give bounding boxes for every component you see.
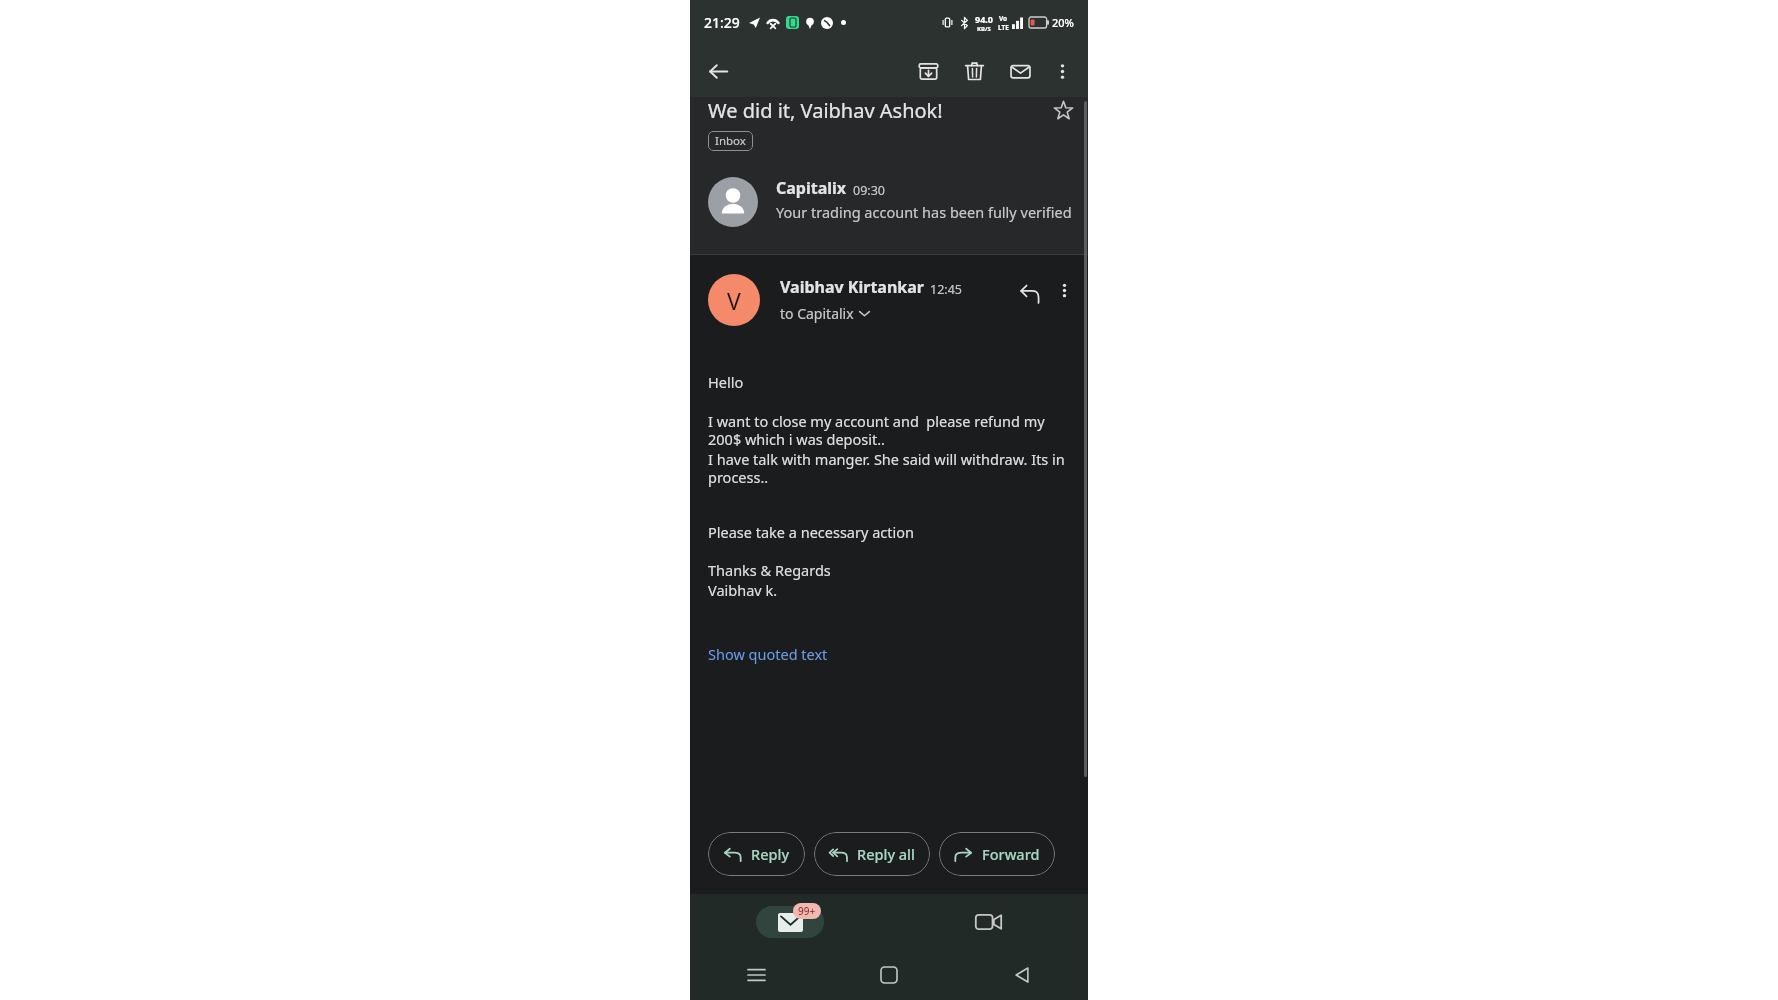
staticText: Hello	[708, 372, 744, 392]
button[interactable]: to Capitalix	[780, 304, 870, 323]
staticText: Please take a necessary action	[708, 522, 914, 542]
button[interactable]: Reply all	[814, 832, 930, 876]
staticText: 12:45	[930, 281, 962, 298]
staticText: We did it, Vaibhav Ashok!	[708, 97, 1046, 123]
staticText: 99+	[798, 904, 816, 918]
button[interactable]: Forward	[939, 832, 1055, 876]
staticText: 09:30	[853, 182, 885, 199]
button[interactable]: Reply	[1010, 274, 1048, 312]
staticText: Vaibhav k.	[708, 580, 778, 600]
button[interactable]: Mark unread	[1000, 51, 1040, 91]
button[interactable]: More options	[1042, 51, 1082, 91]
button[interactable]: Star	[1046, 97, 1080, 123]
staticText: Thanks & Regards	[708, 560, 831, 580]
staticText: I have talk with manger. She said will w…	[708, 449, 1070, 487]
button[interactable]: More options	[1048, 274, 1080, 306]
button[interactable]: Back	[955, 950, 1088, 1000]
staticText: 21:29	[704, 13, 740, 32]
staticText: I want to close my account and please re…	[708, 411, 1070, 449]
staticText: V	[727, 285, 741, 316]
staticText: LTE	[998, 23, 1009, 32]
button[interactable]: Show quoted text	[708, 644, 828, 664]
staticText: 94.0	[975, 13, 993, 25]
staticText: 20%	[1052, 15, 1074, 30]
staticText: Show quoted text	[708, 644, 828, 664]
staticText: Your trading account has been fully veri…	[776, 202, 1072, 222]
staticText: Vo	[999, 14, 1008, 23]
button[interactable]: Mail, 99+ unread	[690, 894, 889, 950]
staticText: to Capitalix	[780, 304, 854, 323]
button[interactable]: Capitalix	[690, 177, 1088, 227]
staticText: Inbox	[715, 133, 746, 149]
button[interactable]: Delete	[954, 51, 994, 91]
staticText: Forward	[982, 844, 1040, 864]
button[interactable]: Inbox	[708, 131, 753, 151]
button[interactable]: Navigate up	[698, 51, 738, 91]
button[interactable]: Home	[822, 950, 955, 1000]
staticText: KB/S	[977, 25, 991, 33]
button[interactable]: Reply	[708, 832, 805, 876]
button[interactable]: Recent apps	[690, 950, 822, 1000]
staticText: Reply	[751, 844, 790, 864]
button[interactable]: Archive	[908, 51, 948, 91]
staticText: Capitalix	[776, 177, 847, 199]
staticText: Reply all	[857, 844, 915, 864]
staticText: Vaibhav Kirtankar	[780, 276, 924, 298]
button[interactable]: Meet	[889, 894, 1088, 950]
